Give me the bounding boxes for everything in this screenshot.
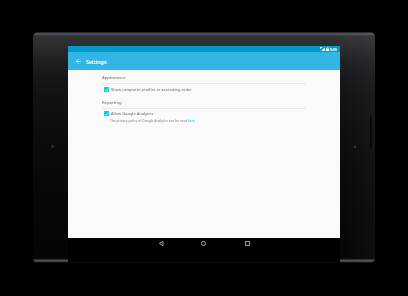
staticText: Show computer profiles in ascending orde… — [111, 87, 192, 92]
button[interactable]: Navigate up — [71, 54, 85, 68]
staticText: The privacy policy of Google Analytics c… — [110, 118, 188, 122]
staticText: . — [196, 118, 197, 122]
staticText: Allow Google Analytics — [111, 111, 154, 116]
button[interactable]: Recent apps — [243, 239, 252, 248]
staticText: Appearance — [102, 75, 126, 81]
button[interactable]: here — [188, 118, 196, 122]
staticText: 8:06 — [330, 47, 338, 52]
button[interactable]: Allow Google Analytics — [102, 109, 158, 118]
staticText: Settings — [86, 58, 107, 65]
button[interactable]: Back — [157, 239, 166, 248]
staticText: Reporting — [102, 100, 122, 106]
button[interactable]: Home — [199, 239, 208, 248]
button[interactable]: Show computer profiles in ascending orde… — [102, 85, 196, 94]
